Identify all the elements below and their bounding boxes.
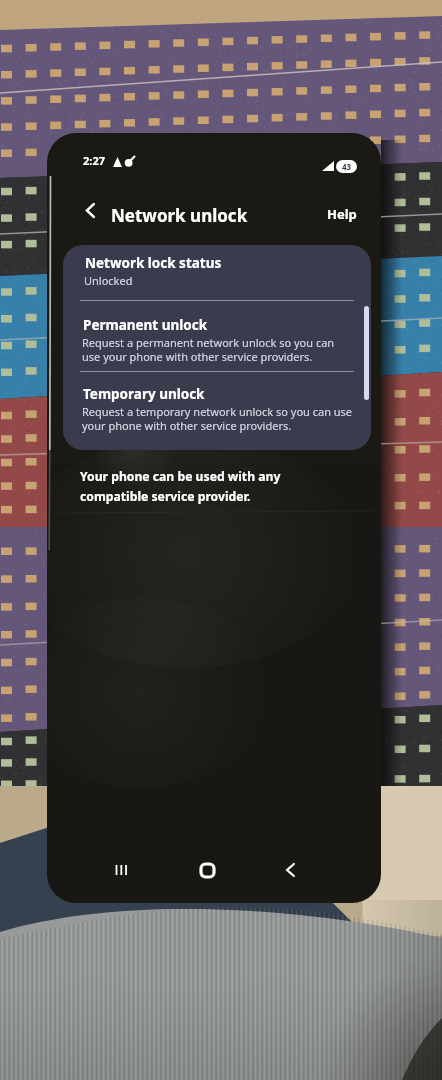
button[interactable] bbox=[63, 372, 371, 450]
button[interactable]: Back bbox=[78, 198, 102, 222]
staticText: use your phone with other service provid… bbox=[82, 349, 313, 364]
staticText: compatible service provider. bbox=[80, 488, 251, 505]
staticText: Request a permanent network unlock so yo… bbox=[82, 335, 335, 350]
staticText: Network unlock bbox=[111, 204, 248, 227]
staticText: Network lock status bbox=[85, 254, 222, 272]
button[interactable] bbox=[63, 301, 371, 371]
button[interactable]: Home bbox=[186, 852, 228, 888]
staticText: Unlocked bbox=[84, 273, 133, 288]
staticText: Permanent unlock bbox=[83, 316, 208, 334]
staticText: Your phone can be used with any bbox=[80, 468, 281, 485]
staticText: Temporary unlock bbox=[83, 385, 205, 403]
staticText: Request a temporary network unlock so yo… bbox=[82, 404, 353, 419]
staticText: Help bbox=[327, 205, 357, 223]
button[interactable] bbox=[63, 245, 371, 300]
button[interactable]: Recents bbox=[100, 852, 142, 888]
button[interactable]: Back bbox=[269, 852, 311, 888]
button[interactable]: Help bbox=[327, 205, 357, 223]
staticText: 43 bbox=[342, 161, 352, 172]
button[interactable]: Network unlock bbox=[111, 204, 248, 227]
staticText: your phone with other service providers. bbox=[82, 418, 292, 433]
staticText: 2:27 bbox=[83, 153, 105, 168]
